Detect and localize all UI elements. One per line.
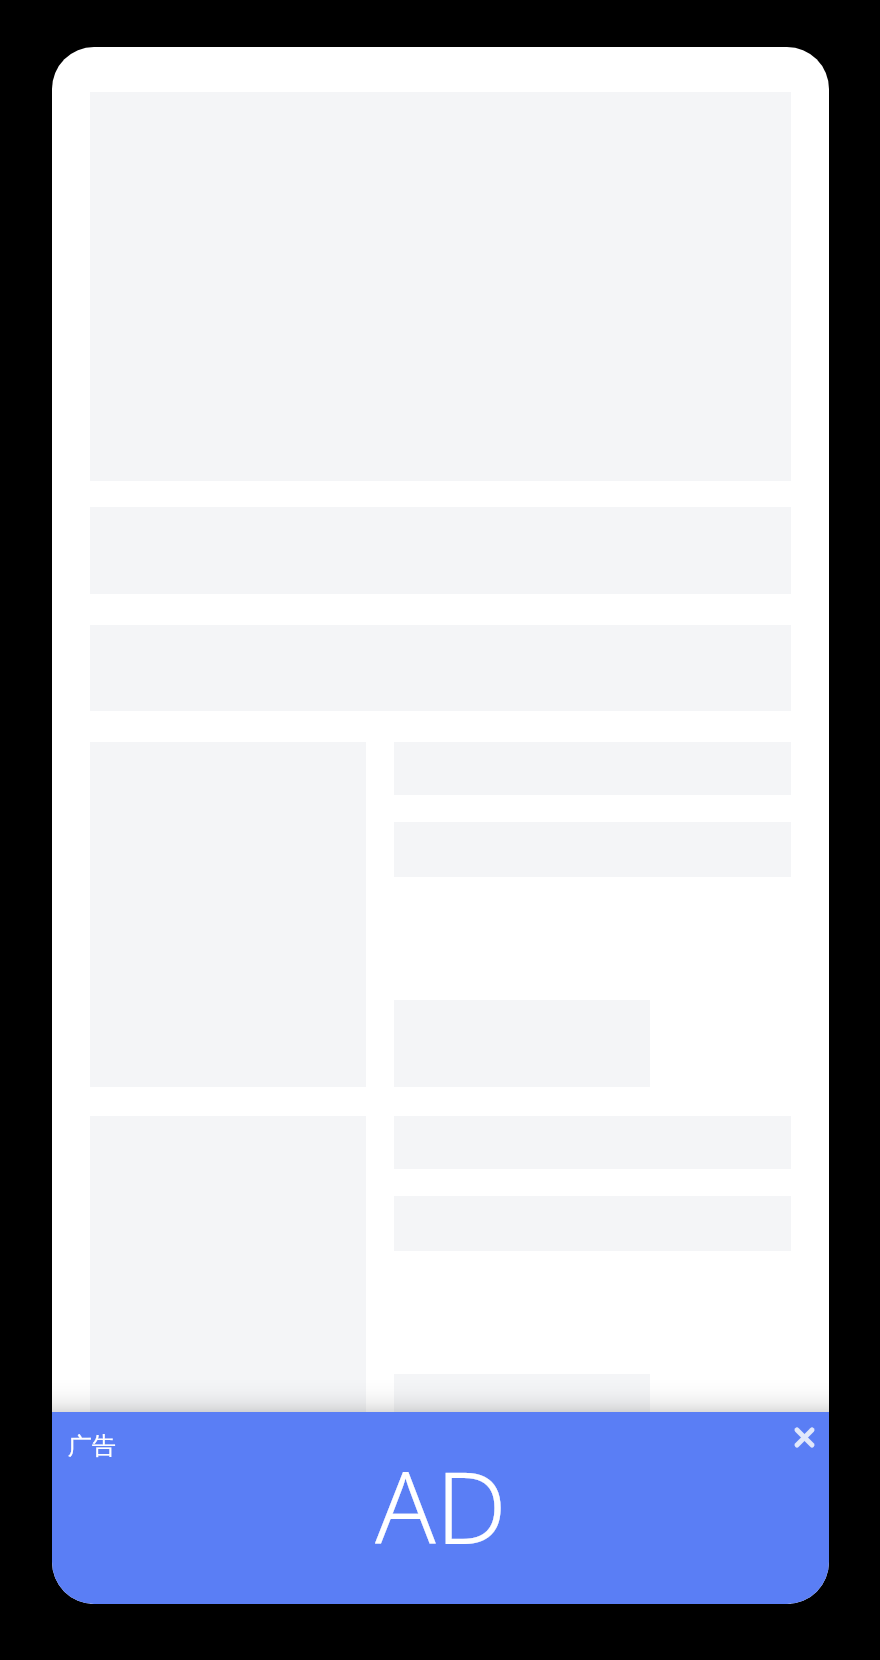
button[interactable]	[90, 1490, 791, 1604]
button[interactable]	[90, 742, 791, 1087]
staticText: 广告	[68, 1431, 116, 1461]
button[interactable]: 广告	[52, 1412, 829, 1604]
button[interactable]	[90, 1116, 791, 1461]
staticText: AD	[375, 1437, 507, 1573]
button[interactable]: Close ad	[782, 1415, 826, 1459]
